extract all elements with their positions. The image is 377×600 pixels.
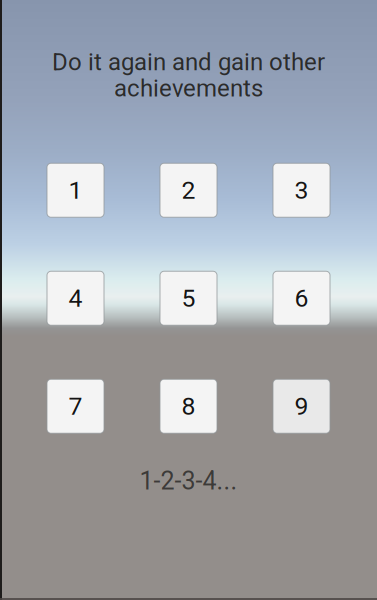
staticText: 2	[181, 176, 195, 205]
button[interactable]: 1	[47, 163, 104, 217]
button[interactable]: 8	[160, 379, 217, 433]
staticText: Do it again and gain other	[52, 48, 325, 76]
staticText: 7	[68, 392, 82, 421]
staticText: 3	[294, 176, 308, 205]
button[interactable]: 3	[273, 163, 330, 217]
button[interactable]: 4	[47, 271, 104, 325]
button[interactable]: 9	[273, 379, 330, 433]
staticText: 1-2-3-4...	[139, 466, 237, 496]
button[interactable]: 5	[160, 271, 217, 325]
button[interactable]: 2	[160, 163, 217, 217]
staticText: 1	[68, 176, 82, 205]
staticText: 8	[181, 392, 195, 421]
staticText: achievements	[114, 74, 263, 102]
staticText: 9	[294, 392, 308, 421]
button[interactable]: 6	[273, 271, 330, 325]
staticText: 5	[181, 284, 195, 313]
staticText: 6	[294, 284, 308, 313]
button[interactable]: 7	[47, 379, 104, 433]
staticText: 4	[68, 284, 82, 313]
